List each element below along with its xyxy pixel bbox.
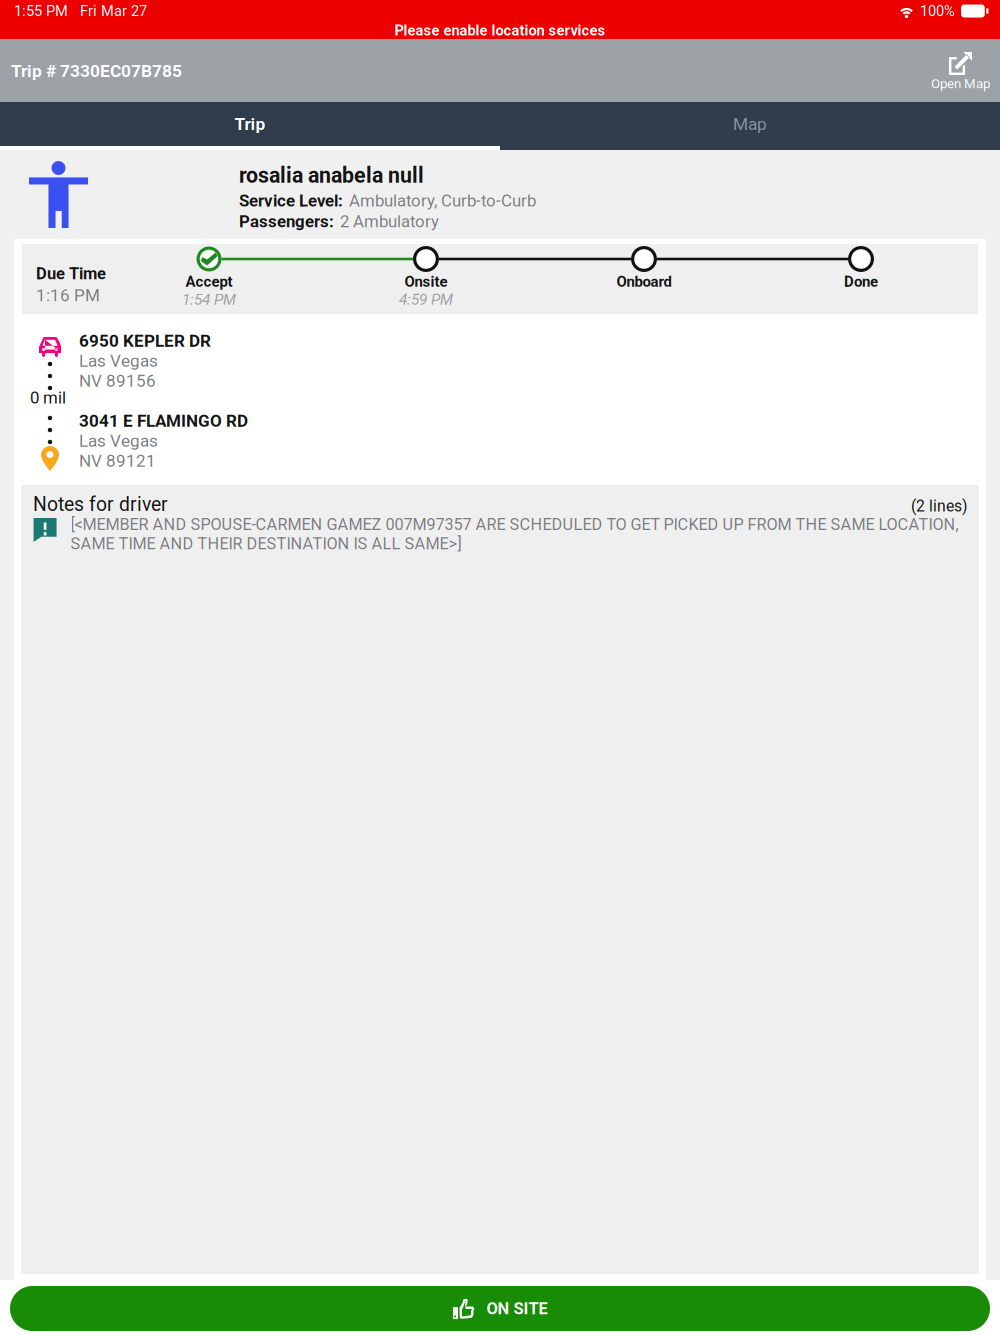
staticText: Trip # 7330EC07B785 (11, 61, 182, 81)
staticText: 3041 E FLAMINGO RD (79, 411, 248, 431)
staticText: 2 Ambulatory (340, 212, 439, 231)
staticText: Please enable location services (394, 22, 605, 39)
staticText: Passengers: (239, 212, 334, 231)
staticText: Fri Mar 27 (80, 2, 147, 20)
staticText: 100% (920, 2, 955, 20)
staticText: Map (733, 114, 767, 134)
staticText: ON SITE (486, 1299, 547, 1318)
button[interactable]: Open Map (921, 39, 1000, 96)
staticText: Service Level: (239, 191, 343, 211)
staticText: Trip (234, 114, 265, 134)
staticText: 4:59 PM (399, 290, 453, 308)
staticText: 0 mil (30, 388, 66, 408)
staticText: Done (844, 273, 878, 290)
staticText: Notes for driver (33, 493, 168, 516)
button[interactable]: ON SITE (0, 1280, 1000, 1334)
staticText: [<MEMBER AND SPOUSE-CARMEN GAMEZ 007M973… (70, 515, 958, 553)
staticText: 1:54 PM (182, 290, 236, 308)
staticText: Onboard (616, 273, 671, 290)
staticText: Due Time (36, 264, 106, 283)
button[interactable]: Map (500, 102, 1000, 150)
staticText: Las Vegas (79, 431, 158, 451)
staticText: rosalia anabela null (239, 163, 424, 188)
staticText: NV 89121 (79, 451, 156, 471)
staticText: 1:16 PM (36, 285, 100, 305)
staticText: NV 89156 (79, 371, 156, 391)
button[interactable]: Trip (0, 102, 500, 150)
staticText: Las Vegas (79, 351, 158, 371)
staticText: Accept (185, 273, 232, 290)
staticText: (2 lines) (911, 497, 967, 515)
staticText: Open Map (931, 76, 990, 92)
staticText: Onsite (404, 273, 447, 290)
staticText: 1:55 PM (14, 2, 68, 20)
staticText: Ambulatory, Curb-to-Curb (349, 191, 536, 211)
staticText: 6950 KEPLER DR (79, 331, 211, 351)
